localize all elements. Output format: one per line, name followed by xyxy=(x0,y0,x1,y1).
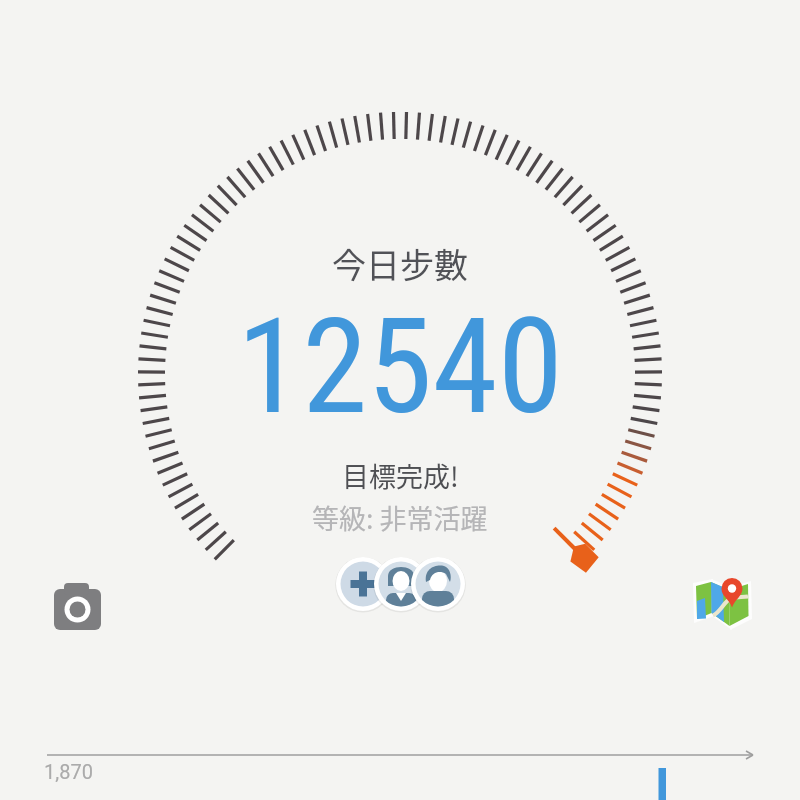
staticText: 1,870 xyxy=(44,760,93,783)
staticText: 12540 xyxy=(237,290,563,445)
button[interactable] xyxy=(373,556,429,612)
staticText: 等級: 非常活躍 xyxy=(312,498,488,537)
staticText: 目標完成! xyxy=(342,456,459,495)
button[interactable] xyxy=(46,576,110,640)
staticText: 今日步數 xyxy=(332,239,468,288)
button[interactable] xyxy=(335,556,391,612)
button[interactable] xyxy=(410,556,466,612)
button[interactable] xyxy=(690,570,756,636)
